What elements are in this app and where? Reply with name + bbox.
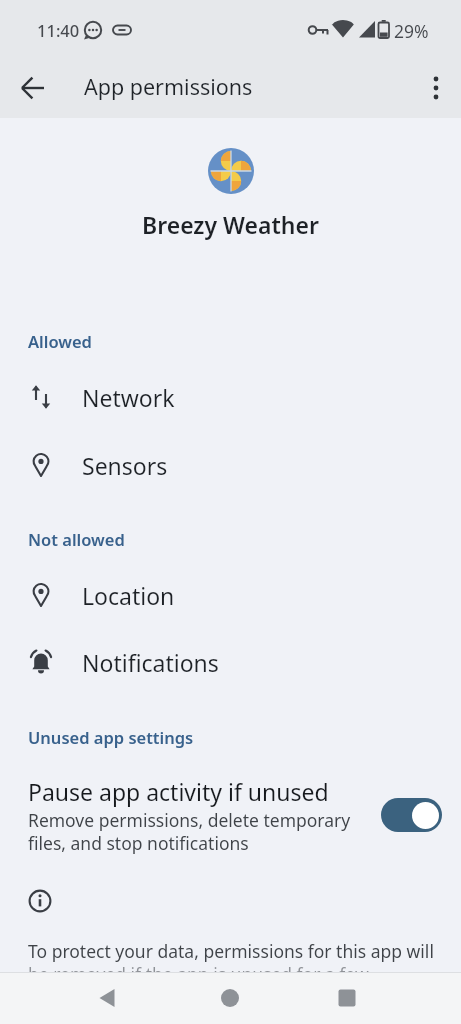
button[interactable] — [332, 983, 362, 1013]
staticText: 29% — [394, 19, 429, 43]
staticText: Pause app activity if unused — [28, 776, 329, 807]
button[interactable]: Network — [0, 363, 461, 431]
staticText: Network — [82, 382, 175, 413]
button[interactable] — [418, 66, 454, 102]
staticText: App permissions — [84, 72, 253, 101]
staticText: be removed if the app is unused for a fe… — [28, 962, 369, 986]
button[interactable]: Sensors — [0, 431, 461, 499]
staticText: To protect your data, permissions for th… — [28, 939, 434, 963]
button[interactable] — [215, 983, 245, 1013]
button[interactable]: Notifications — [0, 628, 461, 696]
button[interactable] — [0, 770, 461, 862]
button[interactable] — [10, 66, 54, 110]
staticText: Location — [82, 580, 175, 611]
button[interactable] — [92, 983, 122, 1013]
staticText: Unused app settings — [28, 726, 194, 748]
staticText: 11:40 — [37, 19, 80, 41]
staticText: Sensors — [82, 450, 168, 481]
staticText: Allowed — [28, 330, 92, 352]
staticText: Notifications — [82, 647, 219, 678]
button[interactable]: Location — [0, 561, 461, 629]
button[interactable] — [381, 798, 442, 832]
staticText: Not allowed — [28, 528, 125, 550]
staticText: Breezy Weather — [142, 209, 319, 240]
staticText: Remove permissions, delete temporary fil… — [28, 808, 351, 856]
